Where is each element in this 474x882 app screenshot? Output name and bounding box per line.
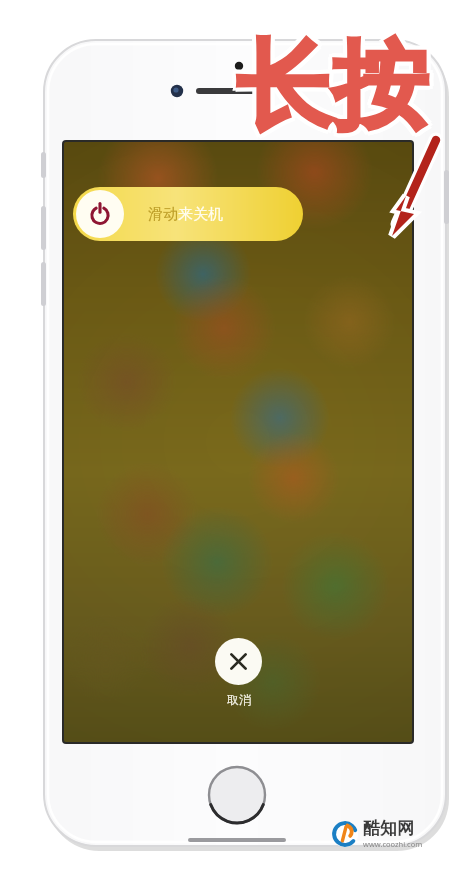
staticText: 长按 [236, 23, 428, 144]
button[interactable]: 滑动 [73, 187, 303, 241]
staticText: 取消 [227, 692, 251, 707]
staticText: 长按 [232, 27, 424, 148]
staticText: 长按 [239, 30, 431, 151]
staticText: 长按 [240, 27, 432, 148]
staticText: 长按 [236, 31, 428, 152]
staticText: 长按 [233, 24, 425, 145]
staticText: www.coozhi.com [363, 839, 423, 849]
button[interactable]: Cancel [215, 638, 262, 707]
staticText: 滑动 [148, 205, 178, 224]
staticText: 长按 [233, 30, 425, 151]
staticText: 长按 [239, 24, 431, 145]
staticText: 长按 [236, 27, 428, 148]
staticText: 酷知网 [363, 818, 414, 839]
other: Cancel [215, 638, 262, 685]
staticText: 来关机 [178, 205, 223, 224]
